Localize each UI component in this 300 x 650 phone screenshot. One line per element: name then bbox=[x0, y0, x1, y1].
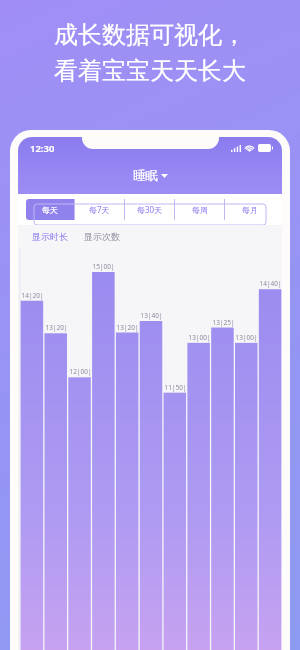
button[interactable]: 每7天 bbox=[75, 199, 124, 220]
button[interactable]: 每周 bbox=[175, 199, 224, 220]
staticText: 13|00| bbox=[188, 333, 211, 342]
button[interactable]: 每月 bbox=[225, 199, 274, 220]
staticText: 15|00| bbox=[92, 262, 115, 271]
button[interactable]: 睡眠 bbox=[129, 166, 172, 186]
staticText: 13|40| bbox=[140, 311, 163, 320]
staticText: 14|40| bbox=[259, 279, 282, 288]
button[interactable]: 显示时长 bbox=[29, 228, 71, 245]
staticText: 成长数据可视化， bbox=[54, 20, 246, 50]
staticText: 显示次数 bbox=[84, 231, 120, 242]
staticText: 12:30 bbox=[30, 142, 55, 155]
staticText: 每天 bbox=[42, 205, 58, 215]
button[interactable]: 每天 bbox=[26, 199, 74, 220]
staticText: 显示时长 bbox=[32, 231, 68, 242]
staticText: 每周 bbox=[192, 205, 208, 215]
staticText: 11|50| bbox=[164, 383, 187, 392]
staticText: 13|20| bbox=[116, 323, 139, 332]
button[interactable]: 每30天 bbox=[125, 199, 174, 220]
staticText: 看着宝宝天天长大 bbox=[54, 56, 246, 86]
staticText: 每月 bbox=[242, 205, 258, 215]
staticText: 13|00| bbox=[235, 333, 258, 342]
staticText: 13|20| bbox=[45, 323, 68, 332]
button[interactable]: 显示次数 bbox=[81, 228, 123, 245]
staticText: 睡眠 bbox=[133, 168, 158, 184]
staticText: 14|20| bbox=[21, 291, 44, 300]
staticText: 12|00| bbox=[69, 367, 92, 376]
staticText: 13|25| bbox=[212, 318, 235, 327]
staticText: 每30天 bbox=[137, 204, 163, 215]
staticText: 每7天 bbox=[89, 204, 110, 215]
